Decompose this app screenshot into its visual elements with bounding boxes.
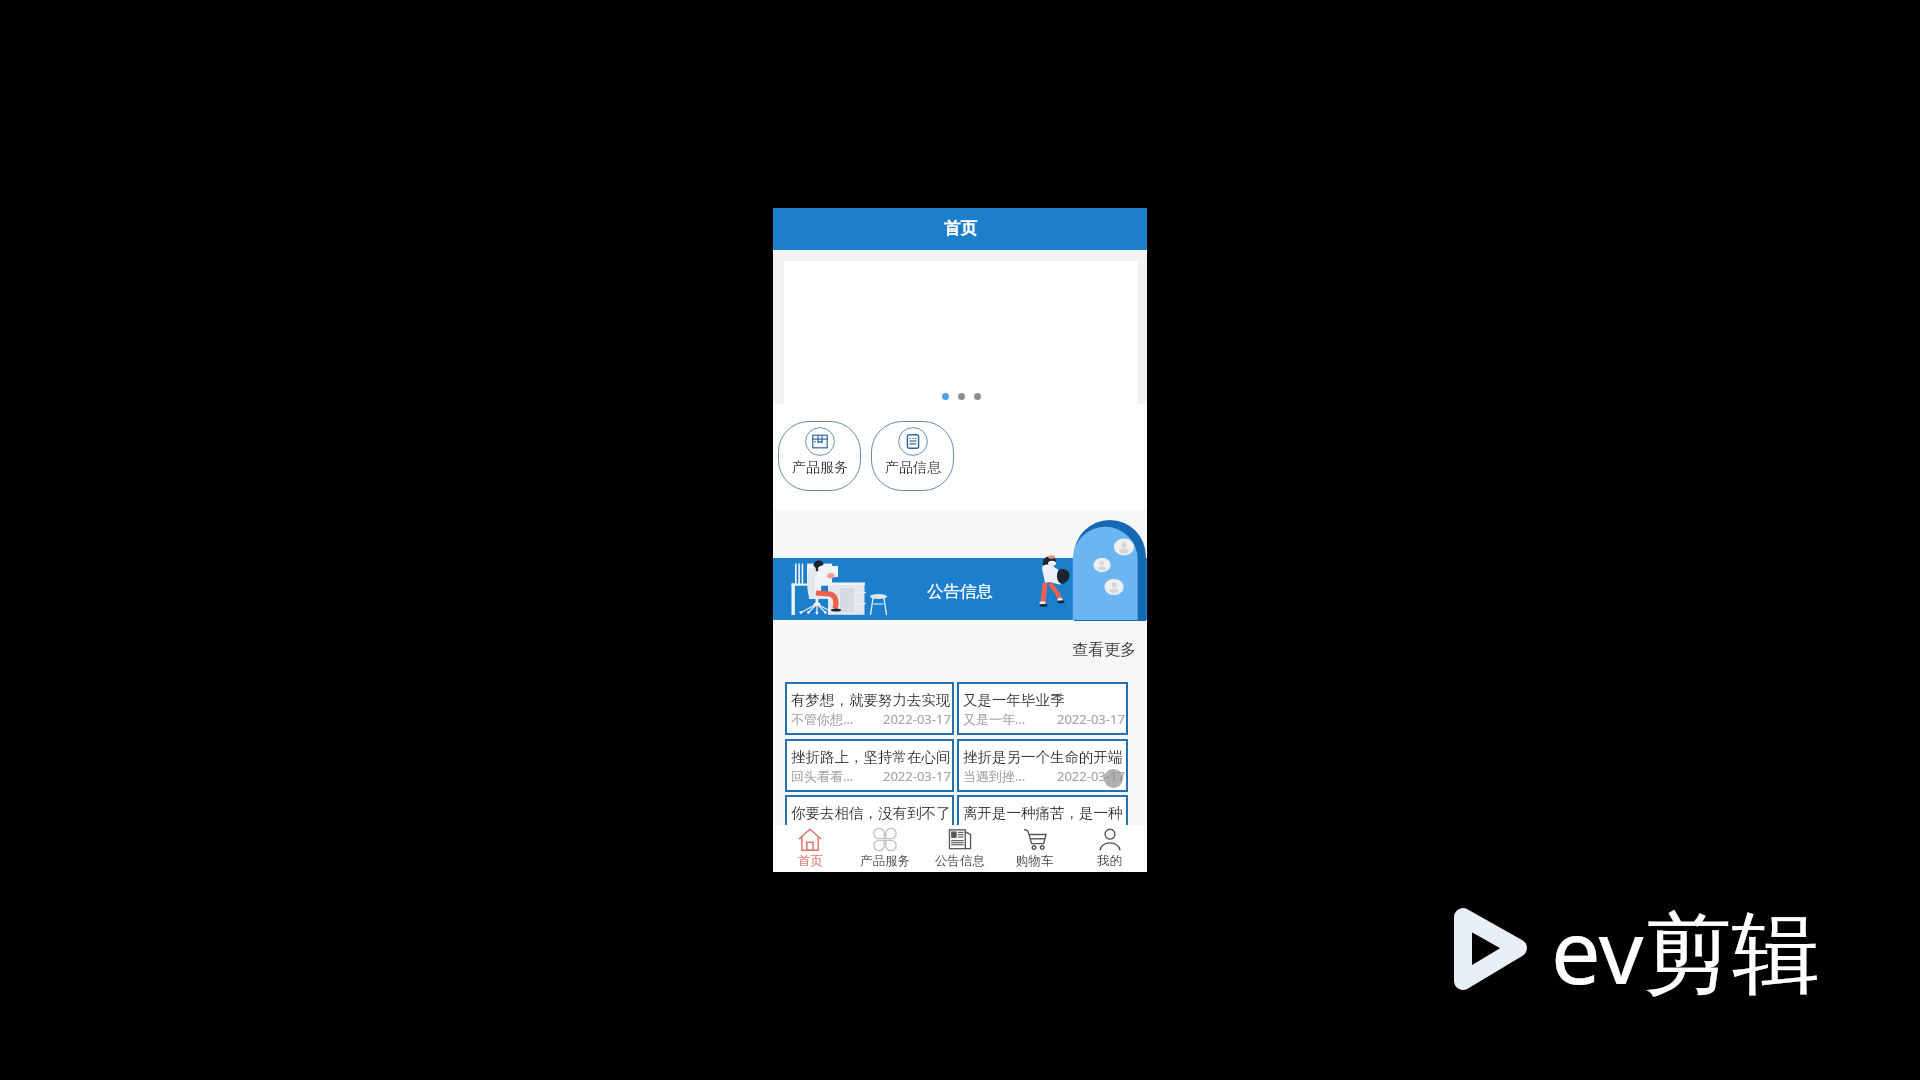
button[interactable]: 查看更多 xyxy=(1065,635,1143,665)
staticText: 首页 xyxy=(944,218,977,239)
button[interactable]: 轮播图 xyxy=(784,261,1138,404)
button[interactable]: 公告信息 xyxy=(922,825,997,872)
staticText: 公告信息 xyxy=(935,853,985,869)
button[interactable]: 有梦想，就要努力去实现 xyxy=(785,682,954,735)
staticText: 查看更多 xyxy=(1072,640,1136,660)
staticText: 购物车 xyxy=(1016,853,1054,869)
button[interactable]: 离开是一种痛苦，是一种 xyxy=(957,795,1128,848)
staticText: 产品服务 xyxy=(860,853,910,869)
button[interactable]: 产品信息 xyxy=(871,421,954,491)
staticText: 不管你想… xyxy=(791,710,854,728)
staticText: 2022-03-17 xyxy=(883,710,951,728)
button[interactable]: 购物车 xyxy=(997,825,1072,872)
staticText: 公告信息 xyxy=(927,581,993,602)
staticText: 产品服务 xyxy=(792,459,848,477)
button[interactable]: 挫折路上，坚持常在心间 xyxy=(785,739,954,792)
staticText: 首页 xyxy=(798,853,823,869)
button[interactable]: 又是一年毕业季 xyxy=(957,682,1128,735)
button[interactable]: 我的 xyxy=(1072,825,1147,872)
button[interactable]: 产品服务 xyxy=(778,421,861,491)
staticText: ev剪辑 xyxy=(1551,890,1820,1010)
button[interactable]: 你要去相信，没有到不了 xyxy=(785,795,954,848)
staticText: 离开是一种痛苦，是一种 xyxy=(963,804,1123,822)
staticText: 2022-03-17 xyxy=(1057,767,1125,785)
staticText: 挫折路上，坚持常在心间 xyxy=(791,748,951,766)
button[interactable]: 挫折是另一个生命的开端 xyxy=(957,739,1128,792)
staticText: 当遇到挫… xyxy=(963,767,1026,785)
staticText: 又是一年毕业季 xyxy=(963,691,1065,709)
button[interactable]: 公告信息 xyxy=(773,558,1147,620)
button[interactable]: 产品服务 xyxy=(847,825,922,872)
button[interactable]: 首页 xyxy=(773,825,847,872)
staticText: 你要去相信，没有到不了 xyxy=(791,804,951,822)
staticText: 我的 xyxy=(1097,853,1122,869)
staticText: 挫折是另一个生命的开端 xyxy=(963,748,1123,766)
staticText: 有梦想，就要努力去实现 xyxy=(791,691,951,709)
staticText: 又是一年… xyxy=(963,710,1026,728)
staticText: 2022-03-17 xyxy=(1057,710,1125,728)
staticText: 回头看看… xyxy=(791,767,854,785)
staticText: 产品信息 xyxy=(885,459,941,477)
staticText: 2022-03-17 xyxy=(883,767,951,785)
